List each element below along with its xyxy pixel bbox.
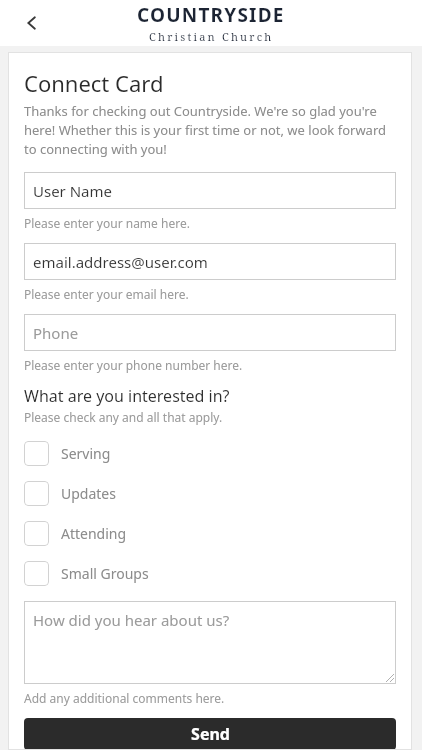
button[interactable]: Send: [24, 718, 396, 750]
button[interactable]: Small Groups: [24, 553, 396, 593]
button[interactable]: Updates: [24, 473, 396, 513]
staticText: Updates: [61, 484, 116, 503]
staticText: Send: [191, 723, 230, 745]
staticText: Please enter your name here.: [24, 215, 190, 231]
staticText: Christian Church: [149, 29, 274, 44]
staticText: Phone: [33, 323, 79, 343]
button[interactable]: Attending: [24, 513, 396, 553]
staticText: email.address@user.com: [33, 252, 208, 272]
staticText: Thanks for checking out Countryside. We'…: [24, 102, 396, 158]
button[interactable]: Phone: [24, 314, 396, 351]
button[interactable]: email.address@user.com: [24, 243, 396, 280]
staticText: Add any additional comments here.: [24, 690, 225, 706]
staticText: How did you hear about us?: [33, 610, 230, 630]
button[interactable]: Serving: [24, 433, 396, 473]
staticText: Connect Card: [24, 68, 164, 98]
button[interactable]: User Name: [24, 172, 396, 209]
staticText: Please enter your email here.: [24, 286, 189, 302]
staticText: Please enter your phone number here.: [24, 357, 243, 373]
staticText: COUNTRYSIDE: [137, 2, 285, 28]
staticText: Attending: [61, 524, 127, 543]
button[interactable]: Back: [12, 3, 52, 43]
staticText: Small Groups: [61, 564, 149, 583]
button[interactable]: How did you hear about us?: [24, 601, 396, 684]
staticText: What are you interested in?: [24, 385, 230, 407]
staticText: Serving: [61, 444, 111, 463]
staticText: Please check any and all that apply.: [24, 409, 223, 425]
staticText: User Name: [33, 181, 113, 201]
